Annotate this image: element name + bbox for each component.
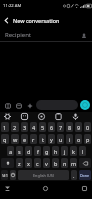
button[interactable]: 7 xyxy=(57,122,64,132)
button[interactable]: . xyxy=(71,170,77,180)
button[interactable]: Emoji xyxy=(10,170,16,180)
button[interactable] xyxy=(36,100,78,110)
staticText: q xyxy=(3,136,7,143)
button[interactable]: Add recipient xyxy=(79,31,88,40)
staticText: x xyxy=(27,160,30,167)
staticText: 9 xyxy=(77,124,81,131)
staticText: 1 xyxy=(3,124,7,131)
button[interactable]: More options xyxy=(24,100,35,111)
staticText: d xyxy=(27,148,31,155)
staticText: b xyxy=(54,160,58,167)
button[interactable]: c xyxy=(34,158,41,168)
button[interactable]: k xyxy=(70,146,77,156)
button[interactable]: i xyxy=(66,134,73,144)
staticText: g xyxy=(45,148,49,155)
staticText: v xyxy=(45,160,48,167)
button[interactable]: Shift xyxy=(1,158,14,168)
staticText: f xyxy=(37,148,39,155)
staticText: !#1 xyxy=(2,173,8,178)
button[interactable]: 5 xyxy=(39,122,46,132)
staticText: 5 xyxy=(41,124,45,131)
staticText: English (US) xyxy=(33,173,55,178)
button[interactable]: Clipboard xyxy=(53,112,63,121)
staticText: 3 xyxy=(23,124,27,131)
button[interactable]: 0 xyxy=(84,122,91,132)
button[interactable]: Gallery xyxy=(2,100,13,111)
button[interactable]: 1 xyxy=(1,122,9,132)
staticText: y xyxy=(50,136,53,143)
staticText: . xyxy=(73,172,75,179)
button[interactable]: Backspace xyxy=(79,158,91,168)
staticText: n xyxy=(63,160,67,167)
staticText: Recipient xyxy=(5,31,32,39)
staticText: 7 xyxy=(59,124,63,131)
staticText: a xyxy=(9,148,13,155)
staticText: s xyxy=(18,148,21,155)
button[interactable]: Stickers xyxy=(13,100,24,111)
button[interactable]: English (US) xyxy=(18,170,69,180)
button[interactable]: h xyxy=(52,146,59,156)
staticText: h xyxy=(54,148,58,155)
button[interactable]: l xyxy=(79,146,86,156)
button[interactable]: j xyxy=(61,146,68,156)
button[interactable]: p xyxy=(84,134,91,144)
button[interactable]: q xyxy=(1,134,9,144)
staticText: 11:22 AM xyxy=(3,3,22,9)
button[interactable]: 3 xyxy=(21,122,28,132)
button[interactable]: Stickers xyxy=(19,112,29,121)
button[interactable]: s xyxy=(16,146,23,156)
button[interactable]: Home xyxy=(40,183,51,194)
staticText: 8 xyxy=(68,124,72,131)
staticText: 0 xyxy=(86,124,90,131)
button[interactable]: o xyxy=(75,134,82,144)
staticText: k xyxy=(72,148,75,155)
button[interactable]: 8 xyxy=(66,122,73,132)
staticText: Done xyxy=(80,173,90,178)
staticText: c xyxy=(36,160,39,167)
button[interactable]: Send xyxy=(80,100,90,110)
staticText: o xyxy=(77,136,81,143)
button[interactable]: w xyxy=(11,134,19,144)
button[interactable]: m xyxy=(70,158,77,168)
staticText: e xyxy=(23,136,27,143)
button[interactable]: f xyxy=(34,146,41,156)
button[interactable]: a xyxy=(7,146,14,156)
button[interactable]: b xyxy=(52,158,59,168)
staticText: 4 xyxy=(32,124,36,131)
button[interactable]: u xyxy=(57,134,64,144)
button[interactable]: Keyboard settings xyxy=(2,112,12,121)
button[interactable]: 2 xyxy=(11,122,19,132)
button[interactable]: x xyxy=(25,158,32,168)
button[interactable]: y xyxy=(48,134,55,144)
button[interactable]: z xyxy=(16,158,23,168)
staticText: p xyxy=(86,136,90,143)
staticText: m xyxy=(71,160,77,167)
staticText: j xyxy=(64,148,66,155)
staticText: w xyxy=(13,136,18,143)
button[interactable]: n xyxy=(61,158,68,168)
button[interactable]: Hide keyboard xyxy=(2,183,13,194)
button[interactable]: t xyxy=(39,134,46,144)
button[interactable]: Enter xyxy=(79,170,91,180)
staticText: 2 xyxy=(13,124,17,131)
button[interactable]: d xyxy=(25,146,32,156)
staticText: New conversation xyxy=(13,17,60,24)
staticText: i xyxy=(69,136,71,143)
button[interactable]: g xyxy=(43,146,50,156)
staticText: u xyxy=(59,136,63,143)
staticText: 6 xyxy=(50,124,54,131)
button[interactable]: e xyxy=(21,134,28,144)
button[interactable]: 6 xyxy=(48,122,55,132)
button[interactable]: 4 xyxy=(30,122,37,132)
staticText: r xyxy=(32,136,35,143)
button[interactable]: !#1 xyxy=(1,170,8,180)
button[interactable]: Back xyxy=(0,14,13,27)
button[interactable]: GIF xyxy=(36,112,46,121)
button[interactable]: Recent apps xyxy=(79,183,90,194)
button[interactable]: r xyxy=(30,134,37,144)
button[interactable]: v xyxy=(43,158,50,168)
button[interactable]: 9 xyxy=(75,122,82,132)
staticText: l xyxy=(82,148,84,155)
button[interactable]: Voice input xyxy=(70,112,80,121)
staticText: z xyxy=(18,160,21,167)
